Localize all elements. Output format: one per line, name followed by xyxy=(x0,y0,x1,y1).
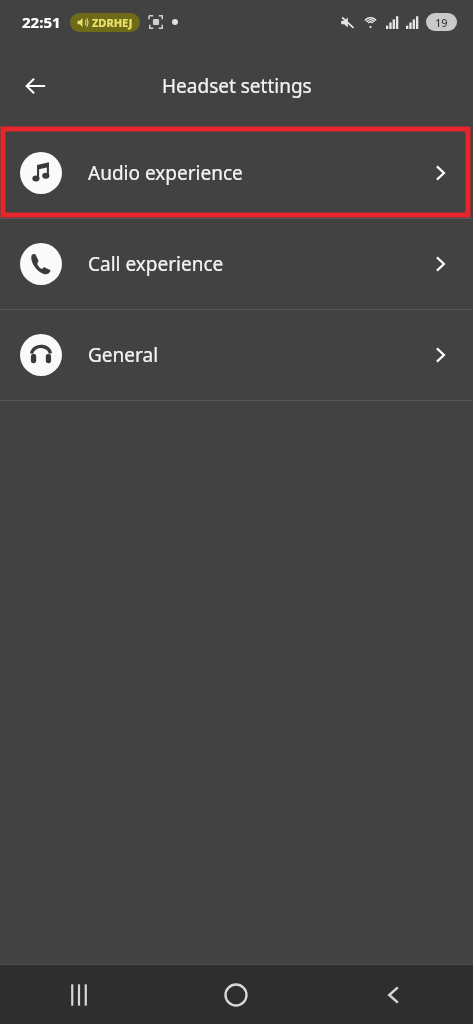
staticText: General xyxy=(88,342,429,368)
staticText: 22:51 xyxy=(22,12,61,32)
staticText: Call experience xyxy=(88,251,429,277)
button[interactable]: Recent apps xyxy=(48,965,110,1024)
button[interactable]: Home xyxy=(205,965,267,1024)
button[interactable]: Back xyxy=(12,62,60,110)
button[interactable]: Back xyxy=(363,965,425,1024)
button[interactable]: General xyxy=(0,310,473,400)
button[interactable]: Call experience xyxy=(0,219,473,309)
staticText: 19 xyxy=(435,15,448,30)
button[interactable]: Audio experience xyxy=(0,128,473,218)
staticText: Headset settings xyxy=(162,73,312,99)
staticText: Audio experience xyxy=(88,160,429,186)
staticText: ZDRHEJ xyxy=(92,15,133,30)
